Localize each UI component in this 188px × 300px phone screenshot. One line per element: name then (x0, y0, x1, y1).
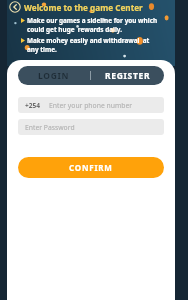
button[interactable]: +254 (18, 97, 164, 113)
staticText: Make our games a sideline for you which … (27, 16, 158, 34)
button[interactable]: CONFIRM (18, 157, 164, 178)
button[interactable]: LOGIN (18, 66, 90, 85)
staticText: +254 (25, 101, 41, 110)
staticText: Enter Password (25, 123, 75, 132)
button[interactable]: REGISTER (91, 66, 164, 85)
staticText: Enter your phone number (49, 101, 133, 110)
staticText: LOGIN (38, 70, 70, 82)
staticText: REGISTER (105, 70, 151, 82)
staticText: Make money easily and withdrawal at any … (27, 36, 150, 54)
button[interactable]: Enter Password (18, 119, 164, 135)
staticText: CONFIRM (69, 162, 113, 173)
staticText: Welcome to the game Center (24, 2, 143, 13)
button[interactable]: Back (9, 1, 21, 13)
